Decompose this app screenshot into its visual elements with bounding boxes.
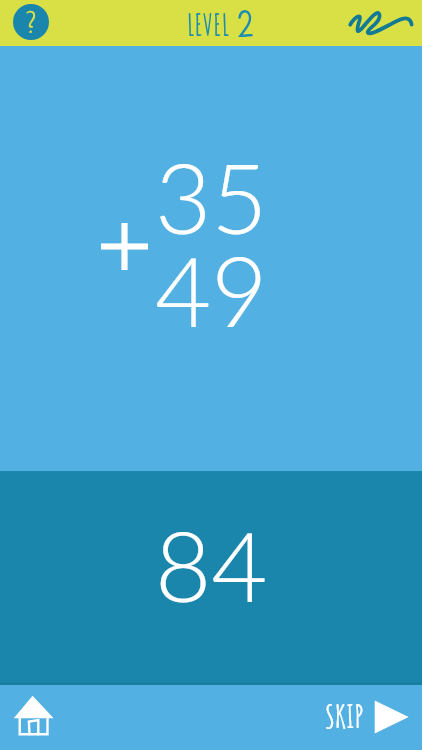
button[interactable]: 84 (0, 471, 422, 684)
button[interactable]: Home (12, 693, 55, 736)
staticText: ? (26, 4, 36, 39)
staticText: LEVEL (187, 6, 230, 44)
staticText: SKIP (325, 695, 364, 735)
staticText: 49 (155, 231, 268, 347)
button[interactable]: Scribble (344, 6, 418, 40)
staticText: 84 (155, 506, 268, 622)
staticText: 35 (155, 138, 268, 254)
button[interactable]: LEVEL (0, 0, 422, 46)
button[interactable]: Help (13, 4, 49, 40)
button[interactable]: Skip (374, 700, 409, 734)
